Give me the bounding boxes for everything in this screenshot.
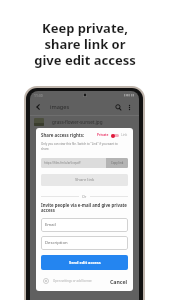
staticText: https://files.fm/a/ar5vqvxff (44, 161, 81, 165)
button[interactable]: Search (112, 101, 124, 113)
button[interactable]: More options (124, 102, 134, 112)
staticText: Description (45, 240, 68, 246)
button[interactable]: Email (41, 218, 128, 232)
staticText: Open settings or add license (53, 279, 92, 283)
button[interactable]: Send edit access (41, 255, 128, 270)
staticText: images (50, 103, 70, 111)
staticText: Copy link (111, 161, 124, 165)
staticText: Invite people via e-mail and give privat… (41, 202, 127, 213)
staticText: grass-flower-sunset.jpg (52, 119, 103, 125)
staticText: 11:30 (34, 93, 43, 98)
staticText: Keep private, share link or give edit ac… (34, 19, 136, 68)
staticText: Send edit access (69, 260, 101, 265)
button[interactable]: Copy link (106, 158, 128, 168)
staticText: Share access rights: (41, 132, 85, 138)
staticText: Share link (75, 177, 95, 183)
staticText: ▮●▮ ▮▮ (124, 93, 135, 97)
button[interactable]: Cancel (110, 278, 128, 285)
button[interactable]: Description (41, 236, 128, 250)
button[interactable]: Back (32, 99, 44, 115)
staticText: Email (45, 222, 56, 228)
staticText: Link (121, 133, 128, 137)
staticText: Private (97, 133, 109, 137)
staticText: Cancel (110, 278, 128, 285)
staticText: Or (82, 194, 87, 199)
staticText: Only you can view this file. Switch to "… (41, 142, 118, 151)
button[interactable] (111, 133, 119, 138)
button[interactable]: Share link (41, 174, 128, 186)
